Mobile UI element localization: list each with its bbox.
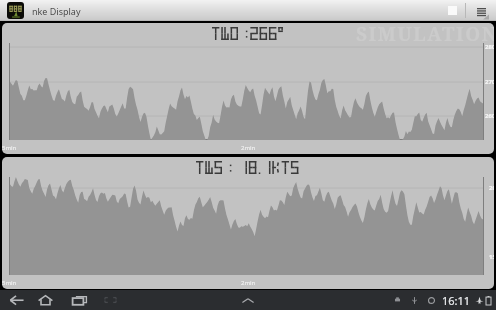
staticText: SIMULATION <box>356 23 494 47</box>
staticText: nke Display <box>32 5 81 17</box>
staticText: 20 <box>489 184 494 192</box>
staticText: 16:11 <box>442 293 471 308</box>
button[interactable]: Recent apps <box>66 290 92 310</box>
staticText: 2min <box>241 144 256 152</box>
button[interactable]: Home <box>32 290 58 310</box>
button[interactable]: Stop simulation <box>440 0 465 21</box>
staticText: 15 <box>489 253 494 261</box>
button[interactable]: Show navigation bar <box>233 290 263 310</box>
staticText: 2min <box>241 279 256 287</box>
staticText: 5min <box>2 279 17 287</box>
staticText: 280 <box>485 43 494 51</box>
button[interactable]: 20 <box>2 157 494 289</box>
staticText: 260 <box>485 112 494 120</box>
button[interactable]: More options <box>466 0 496 21</box>
button[interactable]: Screenshot <box>97 290 123 310</box>
button[interactable]: SIMULATION <box>2 23 494 154</box>
staticText: 270 <box>485 78 494 86</box>
button[interactable]: App icon <box>7 2 24 19</box>
button[interactable]: Back <box>3 290 29 310</box>
staticText: 5min <box>2 144 17 152</box>
